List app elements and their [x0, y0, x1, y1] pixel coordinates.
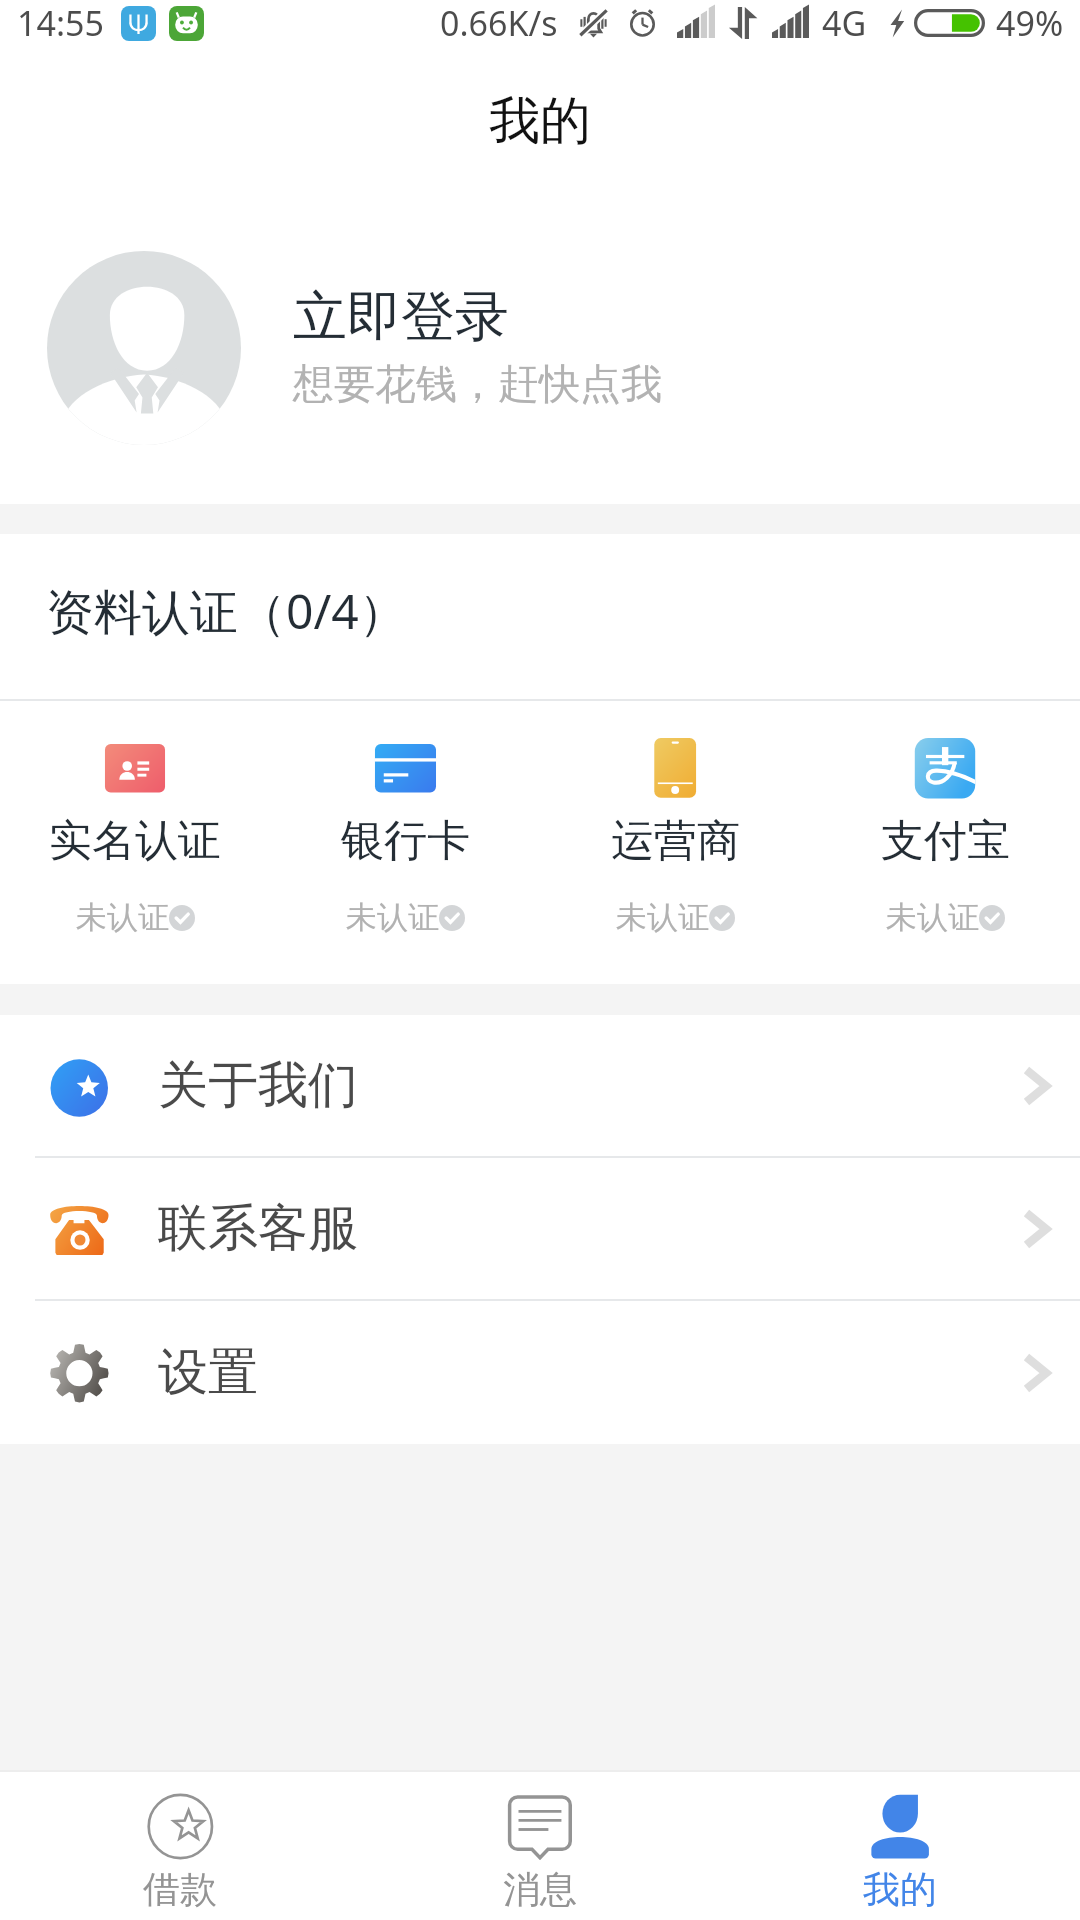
button[interactable]: 设置 [0, 1301, 1080, 1444]
staticText: 支付宝 [881, 814, 1010, 868]
staticText: 未认证 [76, 898, 169, 937]
staticText: 未认证 [616, 898, 709, 937]
staticText: 我的 [489, 89, 591, 153]
staticText: 未认证 [886, 898, 979, 937]
button[interactable]: 立即登录 [0, 178, 1080, 504]
staticText: 实名认证 [49, 814, 221, 868]
staticText: 联系客服 [158, 1197, 358, 1260]
staticText: 立即登录 [293, 283, 509, 351]
staticText: 4G [822, 0, 867, 46]
button[interactable]: 联系客服 [0, 1158, 1080, 1301]
staticText: 消息 [503, 1866, 577, 1913]
staticText: 49% [996, 0, 1064, 46]
button[interactable]: 运营商 [540, 701, 810, 937]
staticText: 未认证 [346, 898, 439, 937]
staticText: 14:55 [17, 0, 104, 46]
button[interactable]: 实名认证 [0, 701, 270, 937]
staticText: 关于我们 [158, 1054, 358, 1117]
staticText: 设置 [158, 1341, 258, 1404]
button[interactable]: 关于我们 [0, 1015, 1080, 1158]
staticText: 运营商 [611, 814, 740, 868]
staticText: 银行卡 [341, 814, 470, 868]
button[interactable]: 借款 [0, 1772, 360, 1913]
staticText: 借款 [143, 1866, 217, 1913]
staticText: 资料认证（0/4） [46, 578, 407, 644]
staticText: 0.66K/s [440, 0, 558, 46]
button[interactable]: 消息 [360, 1772, 720, 1913]
button[interactable]: 支付宝 [810, 701, 1080, 937]
staticText: 想要花钱，赶快点我 [293, 359, 662, 411]
staticText: 我的 [863, 1866, 937, 1913]
button[interactable]: 我的 [720, 1772, 1080, 1913]
button[interactable]: 银行卡 [270, 701, 540, 937]
